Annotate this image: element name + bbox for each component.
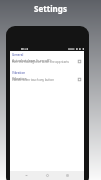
button[interactable]: Vibration <box>10 76 84 82</box>
staticText: Turn the flashlight on when the app star… <box>12 60 69 64</box>
button[interactable]: Toggle <box>78 60 81 63</box>
button[interactable]: Autoshutdown (turn off) <box>10 58 84 64</box>
button[interactable]: Recents <box>63 171 72 180</box>
button[interactable]: Home <box>43 171 52 180</box>
staticText: Vibration <box>12 76 27 81</box>
staticText: Settings <box>0 3 101 14</box>
staticText: Autoshutdown (turn off) <box>12 58 51 63</box>
staticText: Vibration <box>12 71 26 75</box>
staticText: General <box>12 53 24 57</box>
button[interactable]: Back <box>22 171 31 180</box>
staticText: Vibrate when touch any button <box>12 78 54 82</box>
button[interactable]: Toggle <box>78 78 81 81</box>
